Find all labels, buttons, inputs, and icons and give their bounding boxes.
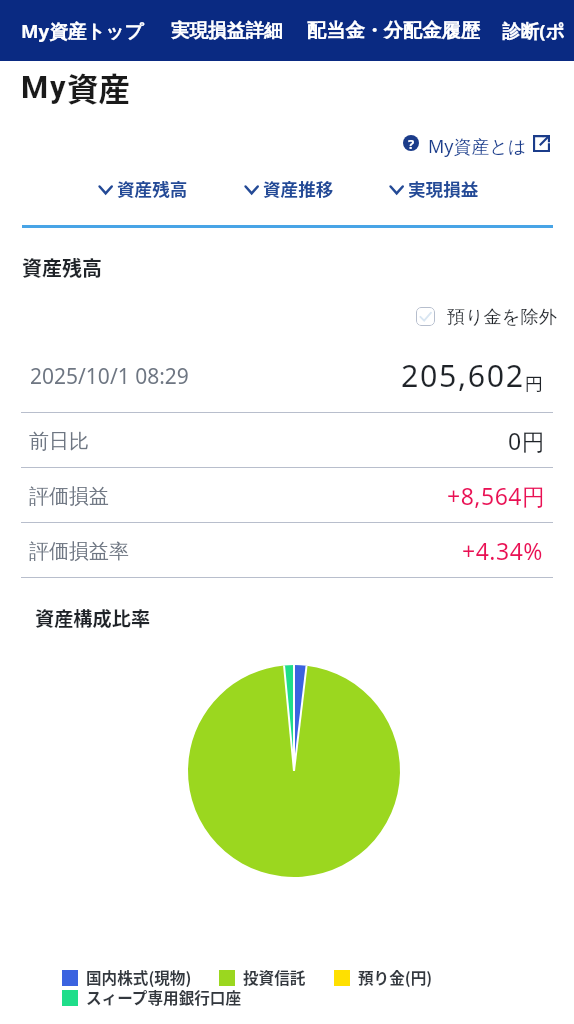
staticText: 評価損益率: [29, 539, 129, 564]
button[interactable]: 実現損益: [387, 176, 479, 201]
staticText: +8,564円: [447, 480, 546, 511]
staticText: 資産残高: [22, 253, 102, 282]
button[interactable]: 預り金(円): [334, 966, 433, 989]
staticText: ?: [408, 135, 415, 151]
staticText: スィープ専用銀行口座: [86, 986, 242, 1009]
button[interactable]: 診断(ポ: [502, 18, 565, 43]
staticText: My資産とは: [428, 134, 527, 159]
staticText: +4.34%: [462, 535, 543, 566]
staticText: 資産: [67, 64, 131, 110]
button[interactable]: 国内株式(現物): [62, 966, 192, 989]
button[interactable]: 配当金・分配金履歴: [307, 19, 480, 43]
staticText: 資産推移: [263, 176, 334, 201]
staticText: 0円: [508, 425, 546, 456]
button[interactable]: 実現損益詳細: [171, 19, 283, 42]
staticText: 預り金(円): [358, 966, 433, 989]
button[interactable]: 預り金を除外: [416, 305, 557, 328]
staticText: 評価損益: [29, 484, 109, 509]
button[interactable]: 資産残高: [96, 176, 188, 201]
button[interactable]: 評価損益: [0, 480, 574, 535]
button[interactable]: 評価損益率: [0, 535, 574, 590]
staticText: 国内株式(現物): [86, 966, 192, 989]
button[interactable]: 前日比: [0, 425, 574, 480]
staticText: 預り金を除外: [447, 305, 557, 328]
button[interactable]: My資産トップ: [21, 18, 144, 43]
staticText: 実現損益: [408, 176, 479, 201]
staticText: 資産構成比率: [35, 604, 151, 632]
button[interactable]: スィープ専用銀行口座: [62, 986, 242, 1009]
staticText: 前日比: [29, 429, 89, 454]
staticText: My: [21, 69, 68, 105]
staticText: 2025/10/1 08:29: [30, 362, 189, 391]
button[interactable]: 投資信託: [219, 966, 306, 989]
staticText: 投資信託: [243, 966, 306, 989]
staticText: 205,602: [401, 355, 525, 396]
staticText: 円: [525, 370, 543, 395]
staticText: 資産残高: [117, 176, 188, 201]
button[interactable]: 資産推移: [242, 176, 334, 201]
button[interactable]: ?: [395, 128, 560, 158]
